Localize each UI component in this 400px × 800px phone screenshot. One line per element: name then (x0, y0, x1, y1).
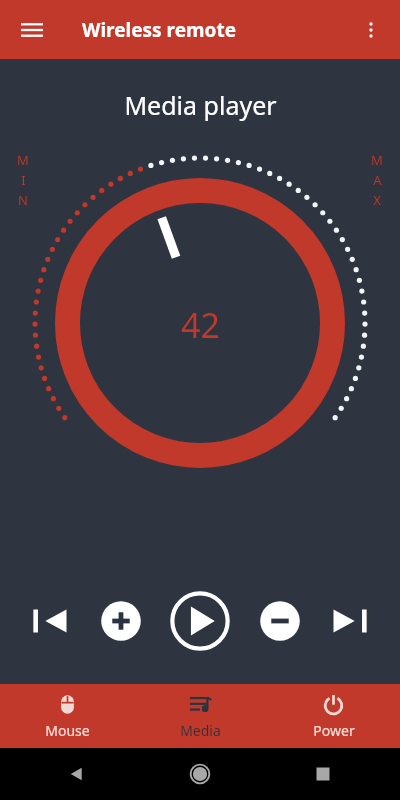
button[interactable]: Power (267, 684, 400, 748)
button[interactable]: Previous track (26, 598, 72, 644)
staticText: I (21, 171, 26, 189)
button[interactable]: Next track (328, 598, 374, 644)
button[interactable]: More options (350, 9, 392, 51)
staticText: N (18, 191, 28, 209)
staticText: Power (313, 721, 355, 740)
button[interactable]: Open navigation menu (10, 8, 54, 52)
staticText: 42 (181, 302, 220, 348)
button[interactable]: Play (169, 590, 231, 652)
button[interactable]: Back (64, 761, 90, 787)
staticText: Wireless remote (82, 17, 236, 43)
button[interactable]: Volume up (99, 599, 143, 643)
staticText: X (373, 191, 381, 209)
staticText: Media player (124, 88, 277, 122)
staticText: Media (180, 721, 221, 740)
staticText: A (373, 171, 382, 189)
button[interactable]: Mouse (0, 684, 134, 748)
staticText: M (371, 151, 383, 169)
button[interactable]: Home (187, 761, 213, 787)
button[interactable]: Recent apps (310, 761, 336, 787)
staticText: M (17, 151, 29, 169)
button[interactable]: Media (134, 684, 267, 748)
button[interactable]: Volume down (258, 599, 302, 643)
button[interactable]: Volume dial, 42 (0, 142, 400, 482)
staticText: Mouse (45, 721, 90, 740)
